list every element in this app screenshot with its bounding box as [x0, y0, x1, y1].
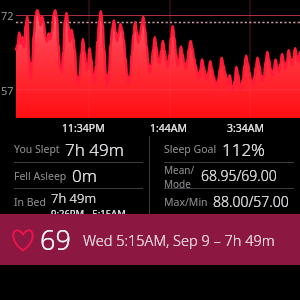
staticText: 68.95/69.00 — [201, 166, 277, 185]
button[interactable]: In Bed — [0, 189, 149, 214]
staticText: 88.00/57.00 — [213, 192, 289, 211]
button[interactable]: Sleep Goal — [150, 136, 300, 162]
staticText: 57 — [1, 83, 14, 98]
button[interactable]: You Slept — [0, 136, 149, 162]
staticText: Fell Asleep — [14, 169, 67, 183]
button[interactable]: Max/Min — [150, 189, 300, 214]
staticText: 3:34AM — [227, 121, 265, 135]
button[interactable]: 72 — [0, 0, 300, 118]
staticText: 7h 49m — [51, 189, 96, 207]
staticText: 72 — [1, 8, 14, 23]
staticText: 69 — [40, 221, 71, 258]
staticText: 11:34PM — [62, 121, 105, 135]
staticText: You Slept — [14, 142, 60, 156]
staticText: Mean/ — [164, 163, 195, 177]
staticText: In Bed — [14, 195, 46, 209]
other: Heart rate — [10, 227, 36, 253]
staticText: Sleep Goal — [164, 142, 217, 156]
staticText: 0m — [72, 164, 97, 187]
button[interactable]: Fell Asleep — [0, 163, 149, 188]
staticText: Max/Min — [164, 195, 208, 209]
staticText: 7h 49m — [65, 138, 124, 161]
staticText: Wed 5:15AM, Sep 9 – 7h 49m — [83, 230, 275, 250]
staticText: 112% — [222, 138, 265, 161]
staticText: Mode — [164, 177, 191, 188]
staticText: 9:26PM - 5:15AM — [51, 207, 126, 214]
button[interactable]: Heart rate — [0, 214, 300, 265]
button[interactable]: Mean/ — [150, 163, 300, 188]
staticText: 1:44AM — [150, 121, 188, 135]
